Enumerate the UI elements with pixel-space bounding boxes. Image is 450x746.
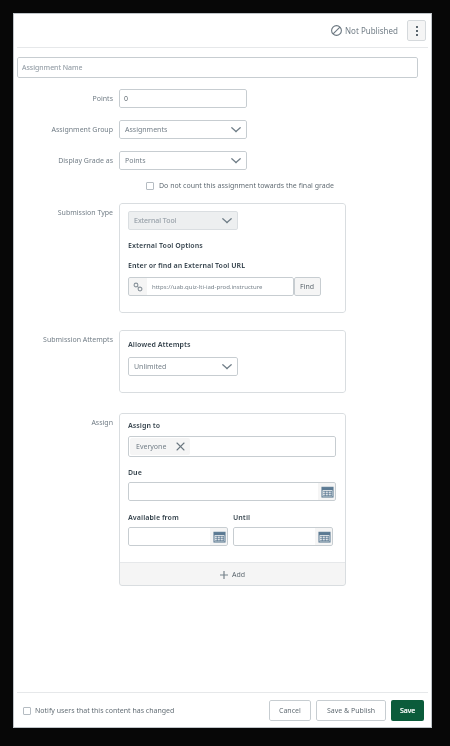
button[interactable]: Points bbox=[119, 151, 247, 170]
other: Choose date bbox=[318, 482, 336, 501]
staticText: Enter or find an External Tool URL bbox=[128, 261, 246, 271]
staticText: Available from bbox=[128, 513, 233, 523]
staticText: Unlimited bbox=[134, 362, 167, 372]
staticText: Due bbox=[128, 468, 142, 478]
button[interactable]: Save bbox=[391, 700, 424, 721]
staticText: Points bbox=[13, 94, 113, 104]
staticText: External Tool bbox=[134, 216, 177, 226]
button[interactable]: Unlimited bbox=[128, 357, 238, 376]
button[interactable]: Assignments bbox=[119, 120, 247, 139]
button[interactable]: Add bbox=[119, 563, 346, 586]
button[interactable]: Notify users that this content has chang… bbox=[21, 704, 177, 718]
staticText: https://uab.quiz-lti-iad-prod.instructur… bbox=[152, 283, 263, 291]
button[interactable]: 0 bbox=[119, 89, 247, 108]
other: Choose date bbox=[315, 527, 333, 546]
staticText: Allowed Attempts bbox=[128, 340, 191, 350]
staticText: Find bbox=[300, 282, 315, 292]
staticText: Display Grade as bbox=[13, 156, 113, 166]
staticText: Everyone bbox=[136, 442, 167, 452]
staticText: Assignments bbox=[125, 125, 168, 135]
staticText: Assignment Group bbox=[13, 125, 113, 135]
button[interactable]: Everyone bbox=[128, 436, 336, 457]
staticText: Cancel bbox=[279, 706, 301, 716]
button[interactable]: Not Published bbox=[329, 22, 400, 39]
staticText: Points bbox=[125, 156, 146, 166]
button[interactable]: Remove Everyone bbox=[177, 443, 184, 450]
staticText: External Tool Options bbox=[128, 241, 203, 251]
staticText: Assign bbox=[13, 418, 113, 428]
button[interactable]: Choose date bbox=[128, 527, 228, 546]
button[interactable]: https://uab.quiz-lti-iad-prod.instructur… bbox=[128, 277, 294, 296]
staticText: Save bbox=[400, 706, 416, 716]
staticText: Do not count this assignment towards the… bbox=[159, 181, 334, 191]
button[interactable]: Save & Publish bbox=[316, 700, 386, 721]
staticText: 0 bbox=[124, 94, 129, 104]
staticText: Until bbox=[233, 513, 251, 523]
staticText: Submission Attempts bbox=[13, 335, 113, 345]
staticText: Submission Type bbox=[13, 208, 113, 218]
staticText: Not Published bbox=[345, 25, 398, 36]
other: Choose date bbox=[210, 527, 228, 546]
staticText: Assignment Name bbox=[22, 63, 83, 73]
staticText: Add bbox=[232, 570, 246, 580]
button[interactable]: Choose date bbox=[128, 482, 336, 501]
button[interactable]: Choose date bbox=[233, 527, 333, 546]
staticText: Save & Publish bbox=[327, 706, 376, 716]
staticText: Assign to bbox=[128, 421, 161, 431]
button[interactable] bbox=[144, 180, 156, 192]
button[interactable]: Find bbox=[294, 277, 321, 296]
button[interactable]: Cancel bbox=[269, 700, 311, 721]
button[interactable]: Assignment Name bbox=[17, 57, 418, 78]
button[interactable]: External Tool bbox=[128, 211, 238, 230]
staticText: Notify users that this content has chang… bbox=[35, 706, 175, 716]
button[interactable]: More options bbox=[407, 20, 426, 41]
